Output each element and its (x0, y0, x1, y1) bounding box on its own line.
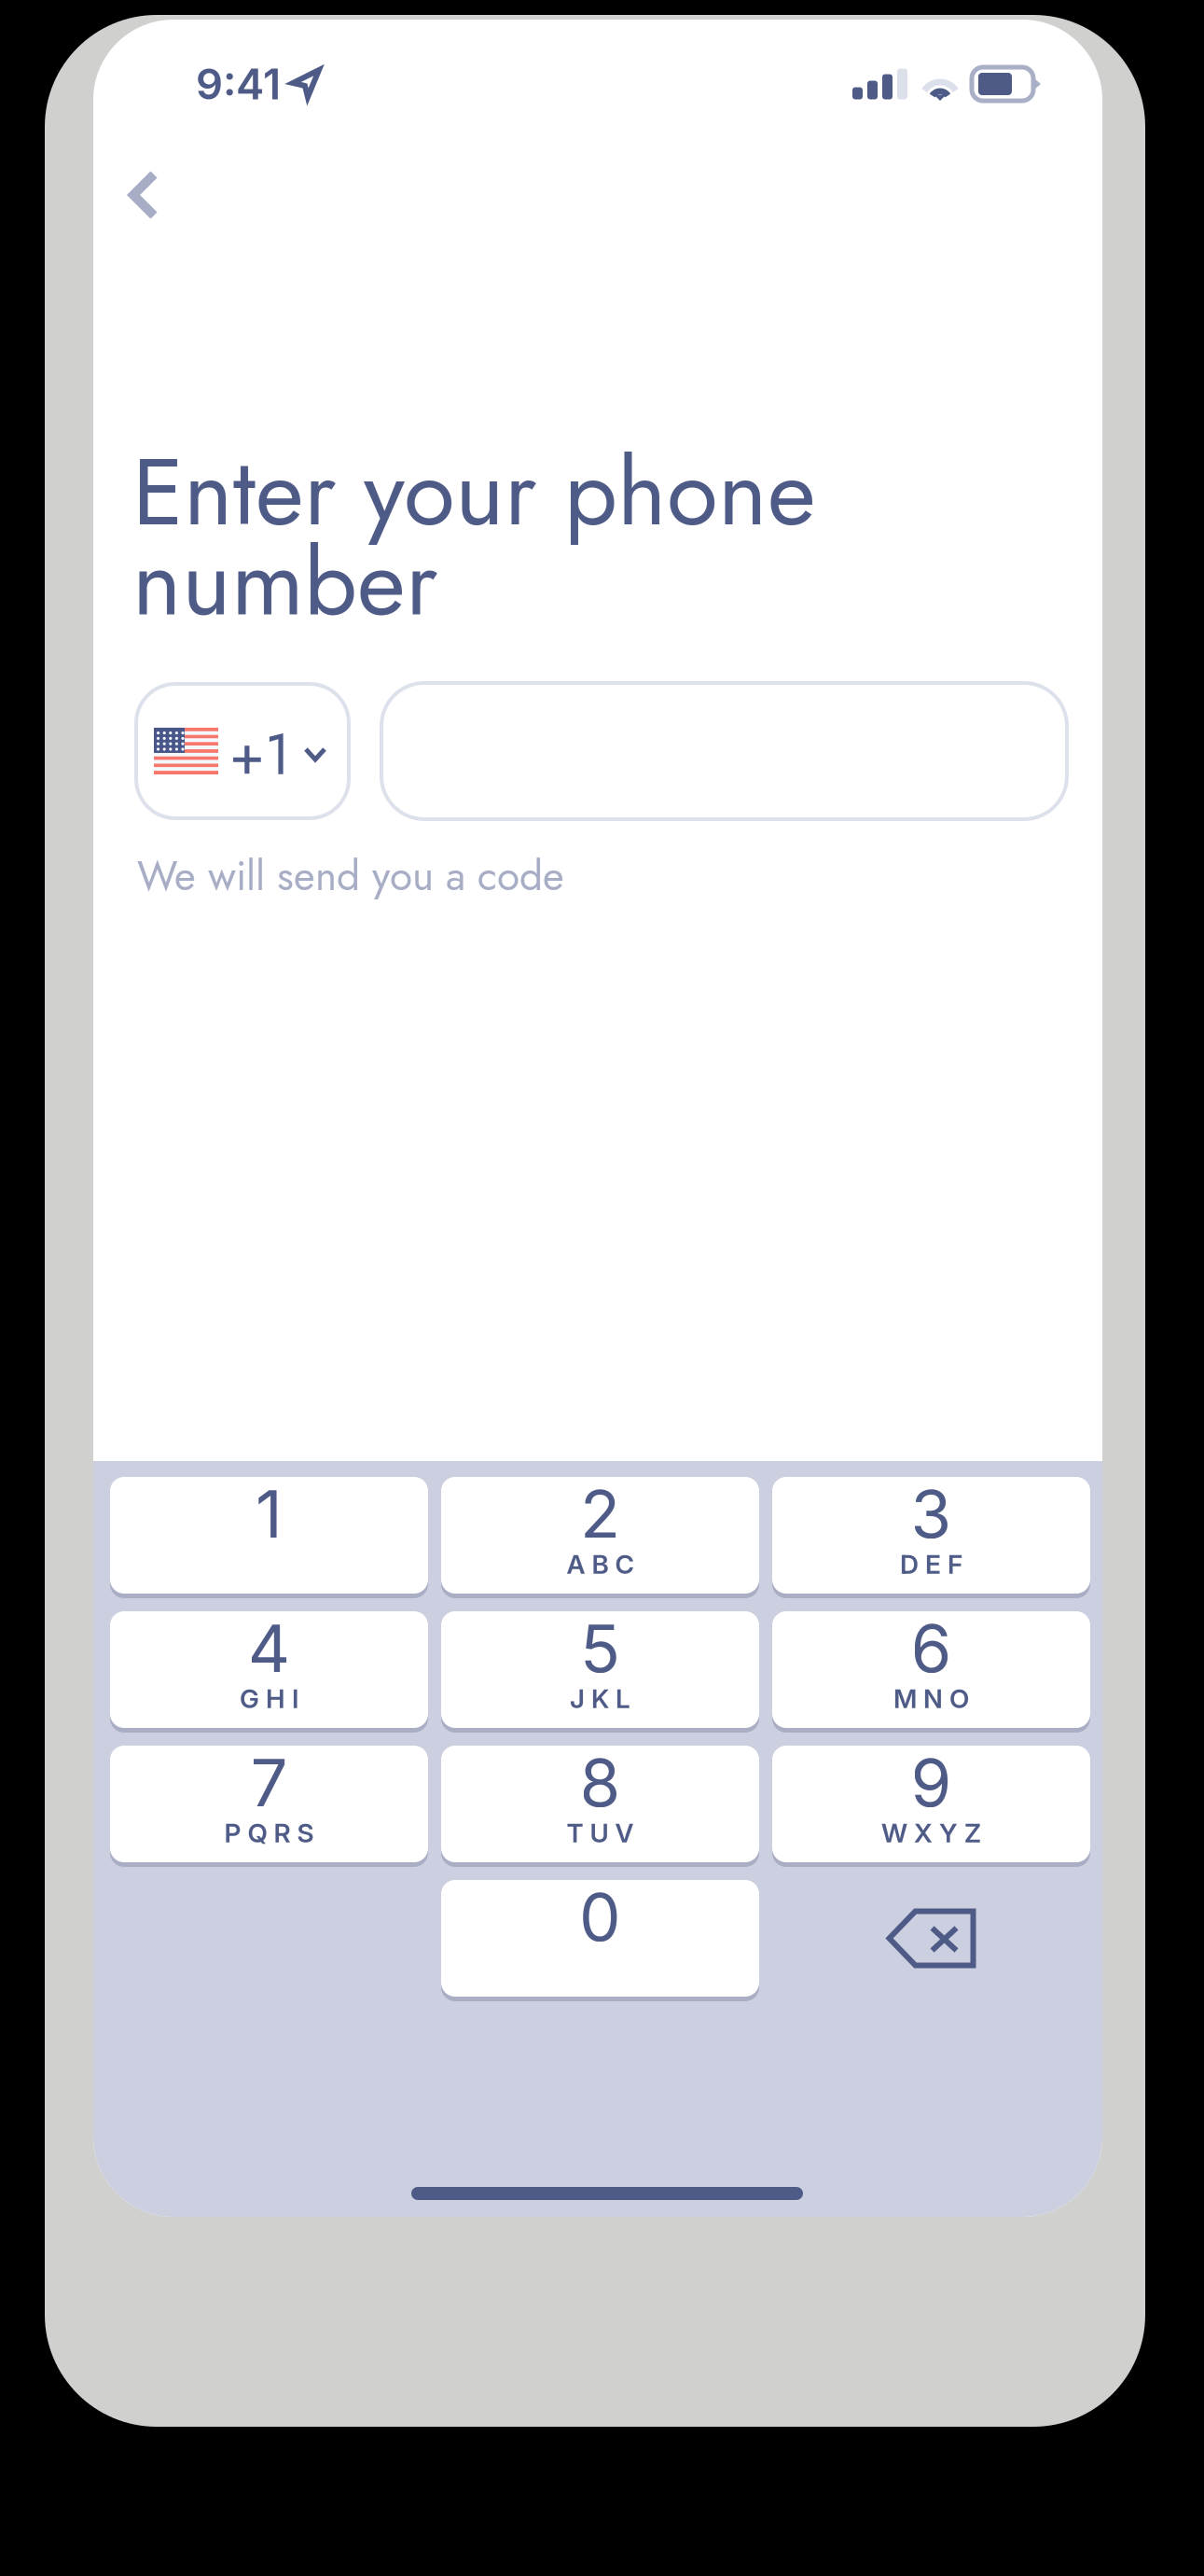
staticText: We will send you a code (137, 846, 564, 906)
button[interactable]: 5 (441, 1611, 759, 1728)
staticText: +1 (229, 713, 291, 795)
staticText: G H I (240, 1683, 298, 1714)
staticText: D E F (900, 1548, 962, 1580)
button[interactable]: 3 (772, 1477, 1090, 1594)
staticText: 3 (911, 1474, 952, 1554)
button[interactable]: 8 (441, 1746, 759, 1862)
staticText: 7 (250, 1743, 288, 1822)
button[interactable]: 4 (110, 1611, 428, 1728)
staticText: W X Y Z (881, 1817, 981, 1849)
staticText: 9 (911, 1743, 952, 1822)
staticText: 1 (256, 1474, 283, 1554)
button[interactable]: 0 (441, 1880, 759, 1997)
staticText: 9:41 (196, 58, 281, 110)
button[interactable]: 6 (772, 1611, 1090, 1728)
button[interactable]: Delete (772, 1880, 1090, 1997)
button[interactable]: 1 (110, 1477, 428, 1594)
staticText: number (132, 515, 437, 649)
staticText: J K L (570, 1683, 630, 1714)
staticText: T U V (567, 1817, 634, 1849)
staticText: 6 (911, 1608, 952, 1688)
staticText: 8 (580, 1743, 621, 1822)
button[interactable]: 2 (441, 1477, 759, 1594)
button[interactable]: +1 (136, 684, 349, 818)
staticText: A B C (567, 1548, 634, 1580)
staticText: P Q R S (224, 1817, 314, 1849)
staticText: 0 (579, 1877, 621, 1957)
staticText: M N O (893, 1683, 969, 1714)
button[interactable]: Back (108, 152, 198, 238)
staticText: 5 (580, 1608, 620, 1688)
button[interactable]: 9 (772, 1746, 1090, 1862)
staticText: 4 (248, 1608, 291, 1688)
staticText: 2 (580, 1474, 620, 1554)
button[interactable]: 7 (110, 1746, 428, 1862)
staticText: Enter your phone (132, 425, 816, 559)
